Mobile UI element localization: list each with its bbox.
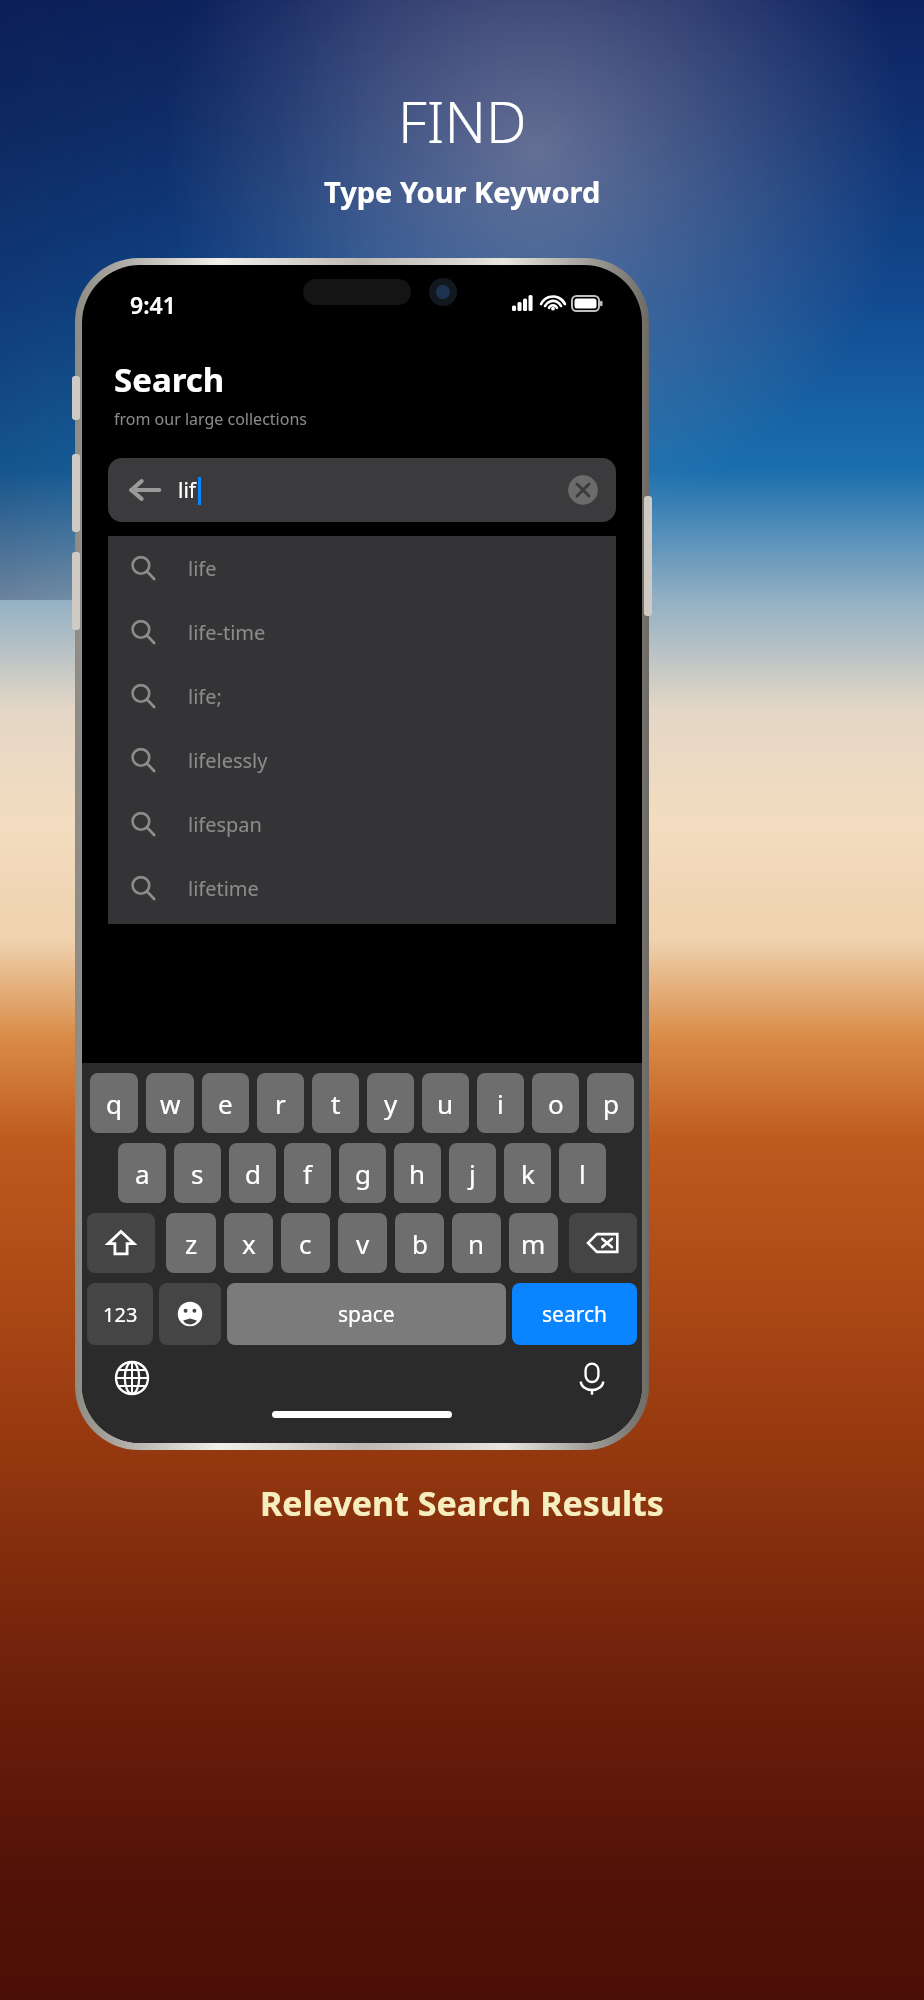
- staticText: e: [218, 1086, 233, 1121]
- button[interactable]: x: [224, 1213, 273, 1273]
- button[interactable]: a: [118, 1143, 166, 1203]
- button[interactable]: u: [422, 1073, 469, 1133]
- staticText: h: [409, 1156, 426, 1191]
- staticText: j: [469, 1156, 476, 1191]
- button[interactable]: o: [532, 1073, 579, 1133]
- button[interactable]: l: [559, 1143, 606, 1203]
- staticText: Type Your Keyword: [324, 172, 601, 211]
- button[interactable]: lifetime: [108, 856, 616, 920]
- button[interactable]: h: [394, 1143, 441, 1203]
- staticText: w: [160, 1086, 181, 1121]
- staticText: i: [497, 1086, 504, 1121]
- button[interactable]: d: [229, 1143, 276, 1203]
- button[interactable]: m: [509, 1213, 558, 1273]
- staticText: v: [356, 1226, 370, 1261]
- button[interactable]: Voice input: [572, 1358, 612, 1398]
- button[interactable]: q: [90, 1073, 138, 1133]
- button[interactable]: Clear: [568, 475, 598, 505]
- button[interactable]: k: [504, 1143, 551, 1203]
- button[interactable]: p: [587, 1073, 634, 1133]
- staticText: d: [245, 1156, 261, 1191]
- staticText: Search: [114, 357, 225, 402]
- staticText: life;: [188, 683, 222, 710]
- button[interactable]: space: [227, 1283, 506, 1345]
- staticText: space: [338, 1300, 395, 1329]
- staticText: lifespan: [188, 811, 262, 838]
- staticText: from our large collections: [114, 408, 307, 430]
- staticText: t: [331, 1086, 341, 1121]
- button[interactable]: 123: [87, 1283, 153, 1345]
- staticText: lif: [178, 476, 197, 505]
- staticText: lifetime: [188, 875, 259, 902]
- button[interactable]: v: [338, 1213, 387, 1273]
- staticText: s: [191, 1156, 204, 1191]
- button[interactable]: j: [449, 1143, 496, 1203]
- staticText: FIND: [398, 82, 527, 160]
- button[interactable]: z: [166, 1213, 216, 1273]
- staticText: z: [185, 1226, 198, 1261]
- staticText: p: [603, 1086, 619, 1121]
- button[interactable]: Back: [108, 458, 616, 522]
- button[interactable]: e: [202, 1073, 249, 1133]
- button[interactable]: Emoji: [159, 1283, 221, 1345]
- button[interactable]: lifespan: [108, 792, 616, 856]
- button[interactable]: n: [452, 1213, 501, 1273]
- staticText: lifelessly: [188, 747, 268, 774]
- staticText: a: [135, 1156, 150, 1191]
- button[interactable]: lifelessly: [108, 728, 616, 792]
- staticText: 123: [103, 1301, 138, 1328]
- button[interactable]: b: [395, 1213, 444, 1273]
- staticText: x: [242, 1226, 256, 1261]
- button[interactable]: g: [339, 1143, 386, 1203]
- staticText: 9:41: [130, 289, 176, 320]
- button[interactable]: f: [284, 1143, 331, 1203]
- button[interactable]: life: [108, 536, 616, 600]
- staticText: search: [542, 1300, 607, 1329]
- button[interactable]: t: [312, 1073, 359, 1133]
- staticText: y: [384, 1086, 398, 1121]
- button[interactable]: Backspace: [569, 1213, 637, 1273]
- staticText: Relevent Search Results: [260, 1480, 664, 1526]
- staticText: f: [303, 1156, 312, 1191]
- button[interactable]: r: [257, 1073, 304, 1133]
- staticText: k: [521, 1156, 535, 1191]
- other: Back: [128, 473, 162, 507]
- button[interactable]: c: [281, 1213, 330, 1273]
- staticText: b: [412, 1226, 428, 1261]
- staticText: m: [521, 1226, 546, 1261]
- button[interactable]: search: [512, 1283, 637, 1345]
- staticText: n: [468, 1226, 485, 1261]
- button[interactable]: y: [367, 1073, 414, 1133]
- staticText: life-time: [188, 619, 266, 646]
- staticText: g: [355, 1156, 371, 1191]
- staticText: q: [106, 1086, 122, 1121]
- button[interactable]: w: [146, 1073, 194, 1133]
- staticText: r: [275, 1086, 286, 1121]
- staticText: l: [579, 1156, 586, 1191]
- button[interactable]: life;: [108, 664, 616, 728]
- button[interactable]: Change keyboard: [112, 1358, 152, 1398]
- staticText: o: [548, 1086, 564, 1121]
- button[interactable]: s: [174, 1143, 221, 1203]
- button[interactable]: life-time: [108, 600, 616, 664]
- staticText: u: [437, 1086, 454, 1121]
- staticText: c: [299, 1226, 312, 1261]
- button[interactable]: Shift: [87, 1213, 155, 1273]
- button[interactable]: i: [477, 1073, 524, 1133]
- staticText: life: [188, 555, 217, 582]
